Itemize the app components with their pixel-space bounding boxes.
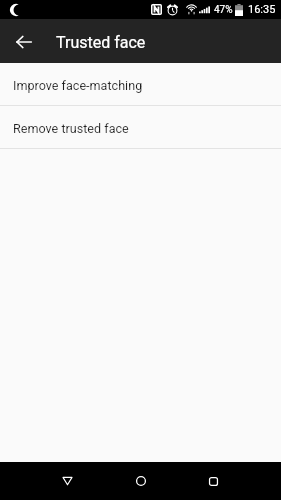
- staticText: Remove trusted face: [13, 121, 129, 136]
- button[interactable]: Improve face-matching: [0, 63, 281, 105]
- button[interactable]: Home: [104, 462, 177, 500]
- staticText: Trusted face: [56, 33, 146, 52]
- button[interactable]: Recent apps: [177, 462, 250, 500]
- staticText: 16:35: [248, 3, 276, 16]
- staticText: 47%: [214, 4, 233, 16]
- staticText: Improve face-matching: [13, 78, 143, 93]
- button[interactable]: Back: [31, 462, 104, 500]
- button[interactable]: Remove trusted face: [0, 106, 281, 148]
- button[interactable]: Navigate up: [11, 29, 37, 55]
